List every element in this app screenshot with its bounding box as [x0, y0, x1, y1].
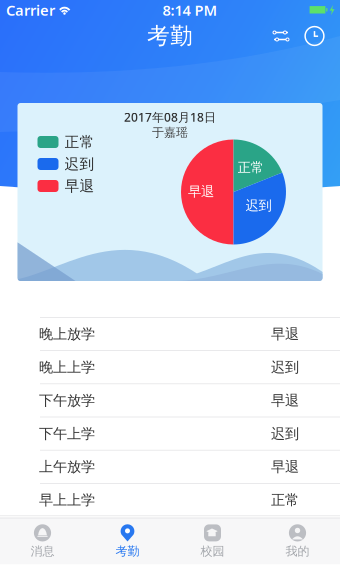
button[interactable]: 消息	[0, 519, 85, 564]
staticText: 早退	[271, 458, 299, 476]
staticText: 正常	[64, 133, 94, 151]
button[interactable]: 下午上学	[0, 417, 340, 450]
staticText: 正常	[271, 491, 299, 509]
button[interactable]: 上午放学	[0, 450, 340, 483]
staticText: 早上上学	[39, 491, 95, 509]
staticText: 校园	[200, 544, 224, 559]
button[interactable]: 筛选	[265, 21, 297, 50]
button[interactable]: 下午放学	[0, 383, 340, 417]
staticText: Carrier	[6, 0, 55, 20]
button[interactable]: 历史记录	[297, 20, 332, 51]
staticText: 早退	[188, 183, 214, 200]
button[interactable]: 晚上放学	[0, 317, 340, 350]
staticText: 正常	[237, 159, 263, 176]
staticText: 下午放学	[39, 392, 95, 409]
button[interactable]: 我的	[255, 519, 340, 564]
button[interactable]: 考勤	[85, 519, 170, 564]
staticText: 晚上放学	[39, 325, 95, 343]
staticText: 2017年08月18日	[124, 109, 216, 125]
staticText: 晚上上学	[39, 358, 95, 376]
staticText: 迟到	[271, 358, 299, 376]
staticText: 8:14 PM	[162, 0, 217, 20]
staticText: 迟到	[245, 197, 271, 214]
staticText: 早退	[271, 392, 299, 409]
staticText: 于嘉瑶	[152, 125, 188, 140]
staticText: 考勤	[147, 22, 193, 50]
staticText: 下午上学	[39, 425, 95, 443]
staticText: 迟到	[64, 155, 94, 173]
staticText: 早退	[64, 177, 94, 195]
staticText: 上午放学	[39, 458, 95, 476]
button[interactable]: 早上上学	[0, 483, 340, 516]
staticText: 考勤	[115, 544, 139, 559]
staticText: 我的	[285, 544, 309, 559]
staticText: 消息	[30, 544, 54, 559]
staticText: 迟到	[271, 425, 299, 443]
button[interactable]: 晚上上学	[0, 350, 340, 383]
button[interactable]: 校园	[170, 519, 255, 564]
staticText: 早退	[271, 325, 299, 343]
